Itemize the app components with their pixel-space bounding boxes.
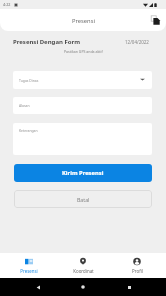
staticText: Pastikan GPS anda aktif [64, 49, 103, 54]
staticText: Koordinat [73, 268, 94, 274]
staticText: Batal [77, 196, 90, 203]
staticText: Presensi Dengan Form [13, 38, 81, 46]
button[interactable]: Keterangan [13, 123, 152, 155]
staticText: Kirim Presensi [62, 169, 104, 177]
button[interactable]: Back [30, 279, 46, 295]
staticText: Alasan [19, 103, 30, 108]
button[interactable]: Tugas Dinas [13, 71, 152, 89]
staticText: Presensi [20, 268, 38, 274]
staticText: Presensi [72, 17, 95, 25]
staticText: 12/04/2022 [125, 39, 149, 45]
button[interactable]: Batal [14, 190, 152, 208]
button[interactable]: Presensi [4, 253, 54, 278]
button[interactable]: Kirim Presensi [14, 164, 152, 182]
button[interactable]: Recent apps [121, 279, 137, 295]
button[interactable]: Home [75, 279, 91, 295]
button[interactable]: Riwayat Presensi [148, 13, 162, 27]
staticText: Tugas Dinas [19, 78, 39, 83]
button[interactable]: Alasan [13, 97, 152, 114]
staticText: Profil [132, 268, 143, 274]
staticText: 4:22 [3, 2, 11, 7]
button[interactable]: Profil [112, 253, 162, 278]
staticText: Keterangan [19, 128, 38, 133]
button[interactable]: Koordinat [58, 253, 108, 278]
